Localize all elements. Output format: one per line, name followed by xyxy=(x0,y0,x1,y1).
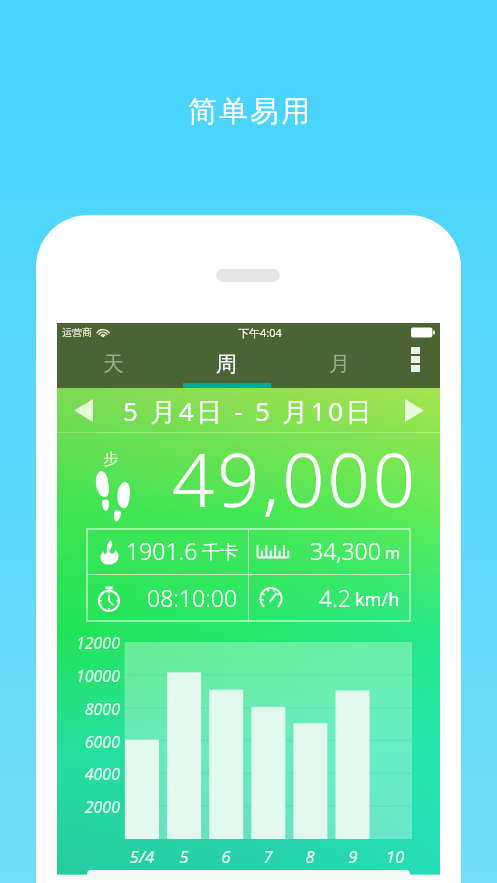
button[interactable]: 月 xyxy=(283,342,396,388)
staticText: 5 xyxy=(160,845,208,868)
staticText: 6 xyxy=(202,845,250,868)
staticText: 6000 xyxy=(57,731,120,753)
staticText: 9 xyxy=(329,845,377,868)
staticText: 08:10:00 xyxy=(147,582,238,613)
staticText: 12000 xyxy=(57,632,120,654)
button[interactable]: Next week xyxy=(388,388,440,432)
staticText: 10000 xyxy=(57,665,120,687)
staticText: 5 月4日 - 5 月10日 xyxy=(123,393,375,429)
button[interactable]: 天 xyxy=(57,342,170,388)
staticText: 简单易用 xyxy=(187,93,311,130)
staticText: 5/4 xyxy=(118,845,166,868)
staticText: 8000 xyxy=(57,698,120,720)
button[interactable]: 08:10:00 xyxy=(87,575,248,621)
staticText: 周 xyxy=(216,351,237,377)
button[interactable]: 1901.6 xyxy=(87,529,248,574)
staticText: 4.2 xyxy=(319,582,351,613)
staticText: 2000 xyxy=(57,796,120,818)
button[interactable]: More options xyxy=(396,342,440,388)
button[interactable]: 周 xyxy=(170,342,283,388)
button[interactable]: 34,300 xyxy=(249,529,410,574)
staticText: 月 xyxy=(329,351,350,377)
staticText: 49,000 xyxy=(172,428,418,524)
staticText: 天 xyxy=(103,351,124,377)
staticText: 7 xyxy=(244,845,292,868)
staticText: 1901.6 xyxy=(126,535,198,566)
staticText: 4000 xyxy=(57,763,120,785)
button[interactable]: 4.2 xyxy=(249,575,410,621)
button[interactable]: Previous week xyxy=(57,388,109,432)
staticText: 10 xyxy=(371,845,419,868)
staticText: km/h xyxy=(355,587,400,612)
staticText: 下午4:04 xyxy=(238,325,282,340)
staticText: 千卡 xyxy=(202,541,238,564)
staticText: m xyxy=(385,542,400,564)
staticText: 34,300 xyxy=(310,535,381,566)
staticText: 8 xyxy=(286,845,334,868)
staticText: 运营商 xyxy=(62,326,92,339)
staticText: 步 xyxy=(103,450,118,469)
